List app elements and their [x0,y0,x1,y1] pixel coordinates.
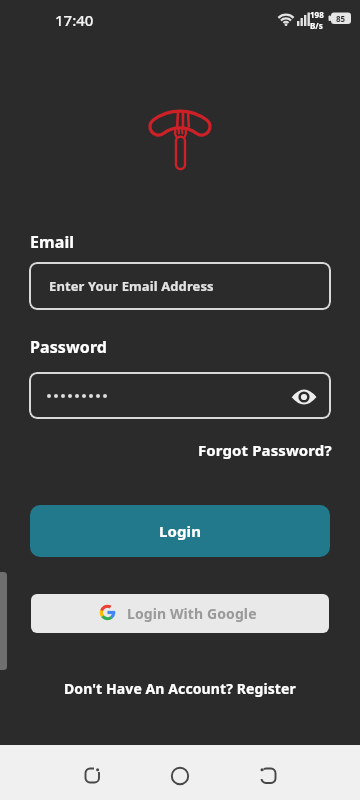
staticText: 85 [336,13,346,24]
staticText: Don't Have An Account? Register [64,679,296,698]
button[interactable] [220,745,300,800]
button[interactable]: Don't Have An Account? Register [0,677,360,699]
staticText: Password [30,336,108,358]
button[interactable] [140,745,220,800]
staticText: B/s [310,20,323,31]
staticText: Login [159,521,201,541]
button[interactable]: Login With Google [31,594,329,633]
button[interactable]: Enter Your Email Address [29,262,331,310]
button[interactable]: Login [30,505,330,557]
button[interactable] [60,745,140,800]
button[interactable] [29,372,331,419]
staticText: Forgot Password? [198,440,332,460]
staticText: Login With Google [127,604,257,623]
staticText: Email [30,231,75,253]
button[interactable]: Forgot Password? [190,438,332,462]
staticText: 17:40 [55,10,94,30]
staticText: 198 [310,9,324,20]
staticText: Enter Your Email Address [49,277,214,295]
